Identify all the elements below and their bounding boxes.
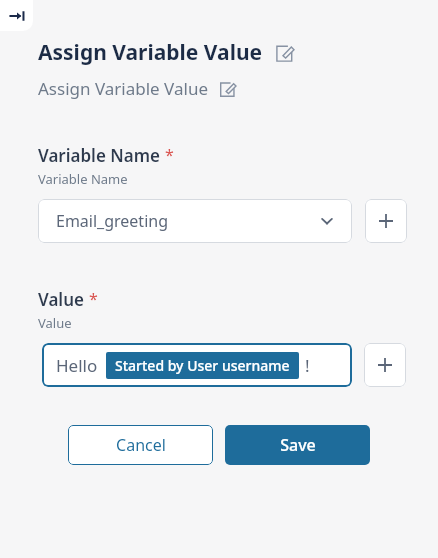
staticText: Assign Variable Value [38, 77, 208, 100]
staticText: Value [38, 314, 72, 332]
button[interactable]: Hello [42, 343, 352, 387]
button[interactable]: Cancel [68, 425, 213, 465]
staticText: Cancel [116, 434, 166, 456]
staticText: Variable Name [38, 170, 128, 188]
staticText: ! [305, 354, 310, 377]
button[interactable]: Email_greeting [38, 199, 352, 243]
staticText: Hello [56, 354, 98, 377]
button[interactable]: Collapse panel [0, 0, 33, 31]
staticText: Started by User username [115, 356, 290, 375]
staticText: Assign Variable Value [38, 38, 263, 67]
staticText: Email_greeting [56, 210, 320, 232]
button[interactable]: Save [225, 425, 370, 465]
button[interactable]: Add variable [365, 199, 407, 243]
staticText: Save [280, 434, 316, 456]
staticText: * [165, 144, 174, 166]
button[interactable]: Edit description [216, 78, 238, 100]
staticText: * [89, 288, 98, 310]
button[interactable]: Edit title [272, 41, 296, 65]
staticText: Variable Name [38, 144, 160, 167]
staticText: Value [38, 288, 84, 311]
button[interactable]: Add value token [364, 343, 406, 387]
